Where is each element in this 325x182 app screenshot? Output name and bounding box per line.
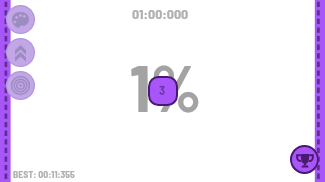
staticText: BEST: 00:11:355 [13,168,75,180]
button[interactable]: Theme [6,5,35,34]
staticText: 1% [130,48,202,125]
staticText: 01:00:000 [132,5,189,22]
button[interactable]: Boost [6,38,35,67]
button[interactable]: Rings [6,71,35,100]
button[interactable]: Leaderboard [290,145,319,174]
staticText: 3 [159,82,166,97]
button[interactable]: Player [148,76,178,106]
